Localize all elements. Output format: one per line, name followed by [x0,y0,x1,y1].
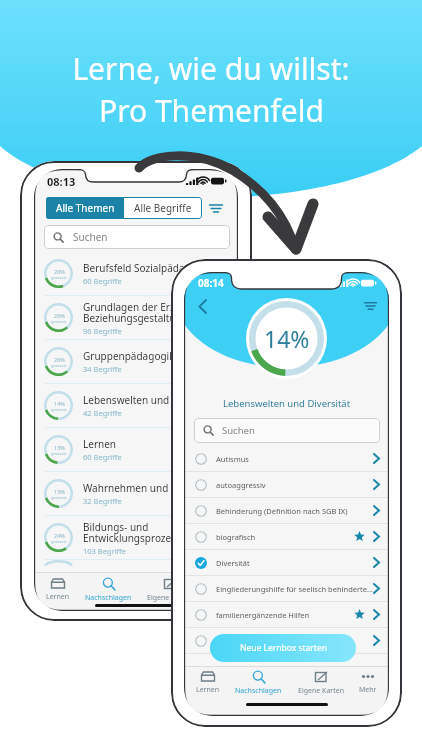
button[interactable]: 13% [44,428,234,471]
staticText: 14% [264,323,310,354]
staticText: Mehr [359,685,377,695]
button[interactable]: Nachschlagen [232,670,285,696]
button[interactable]: autoaggressiv [195,472,380,497]
staticText: Eigene Karten [298,686,344,696]
staticText: Grundlagen der Erziehung und Beziehungsg… [83,300,229,325]
staticText: Eigene Karten [147,593,193,603]
staticText: Lernen [83,437,117,451]
button[interactable]: Suchen [194,418,380,443]
staticText: 08:13 [47,174,76,189]
staticText: Lebenswelten und Diversität [83,393,217,407]
staticText: familienergänzende Hilfen [216,610,310,620]
staticText: 15% [54,488,65,495]
button[interactable]: biografisch [195,524,380,549]
staticText: 96 Begriffe [83,326,122,336]
staticText: Diversität [216,558,250,568]
staticText: Lernen [46,592,70,602]
staticText: 32 Begriffe [83,496,122,506]
staticText: Alle Themen [56,201,115,215]
staticText: 26% [54,356,65,363]
button[interactable]: Eigene Karten [144,577,196,603]
button[interactable]: 15% [44,472,234,515]
button[interactable]: Behinderung (Definition nach SGB IX) [195,498,380,523]
button[interactable]: Nachschlagen [82,577,135,603]
button[interactable]: Familienzentrum [195,628,380,653]
staticText: Wahrnehmen und Beobachten [83,481,228,495]
button[interactable]: Alle Themen [46,197,124,219]
staticText: Eingliederungshilfe für seelisch behinde… [216,584,373,594]
staticText: 13% [54,444,65,451]
staticText: 60 Begriffe [83,452,122,462]
button[interactable]: Lernen [193,670,223,695]
staticText: 60 Begriffe [83,276,122,286]
staticText: gewusst [51,319,67,324]
staticText: 14% [54,400,65,407]
button[interactable]: 20% [44,252,234,295]
button[interactable]: familienergänzende Hilfen [195,602,380,627]
staticText: Lebenswelten und Diversität [223,397,351,410]
button[interactable]: Suchen [44,225,230,249]
staticText: autoaggressiv [216,480,266,490]
staticText: Autismus [216,454,249,464]
staticText: Pro Themenfeld [99,90,324,131]
staticText: Alle Begriffe [134,201,192,215]
button[interactable]: Back [191,295,213,317]
button[interactable]: 26% [44,340,234,383]
staticText: 42 Begriffe [83,408,122,418]
button[interactable]: Filter [202,196,230,220]
staticText: 103 Begriffe [83,546,126,556]
button[interactable]: Alle Begriffe [124,197,202,219]
staticText: gewusst [51,363,67,368]
staticText: Lernen [196,685,220,695]
staticText: Neue Lernbox starten [240,642,327,654]
staticText: Berufsfeld Sozialpädagogik [83,261,211,275]
staticText: biografisch [216,532,256,542]
staticText: 20% [54,268,65,275]
staticText: 34 Begriffe [83,364,122,374]
staticText: Suchen [222,424,255,437]
staticText: Familienzentrum [216,636,276,646]
button[interactable]: 24% [44,516,234,559]
staticText: Suchen [73,230,108,244]
button[interactable]: Neue Lernbox starten [210,634,356,662]
button[interactable]: 14% [44,384,234,427]
staticText: Mehr [208,592,226,602]
staticText: gewusst [51,407,67,412]
button[interactable]: Diversität [195,550,380,575]
staticText: 24% [54,532,65,539]
button[interactable]: Eigene Karten [295,670,347,696]
button[interactable]: Mehr [205,577,229,602]
button[interactable]: 26% [44,296,234,339]
staticText: Lerne, wie du willst: [72,48,350,89]
staticText: 26% [54,312,65,319]
staticText: 08:14 [198,276,224,290]
staticText: gewusst [51,275,67,280]
staticText: Nachschlagen [85,593,132,603]
button[interactable]: Mehr [356,670,380,695]
staticText: Behinderung (Definition nach SGB IX) [216,506,348,516]
staticText: Gruppenpädagogik [83,349,175,363]
staticText: Nachschlagen [235,686,282,696]
button[interactable]: Lernen [43,577,73,602]
button[interactable]: Autismus [195,446,380,471]
staticText: gewusst [51,495,67,500]
staticText: Bildungs- und Entwicklungsprozesse [83,520,187,545]
staticText: gewusst [51,451,67,456]
button[interactable]: Filter [358,294,382,318]
staticText: gewusst [51,539,67,544]
button[interactable]: Eingliederungshilfe für seelisch behinde… [195,576,380,601]
